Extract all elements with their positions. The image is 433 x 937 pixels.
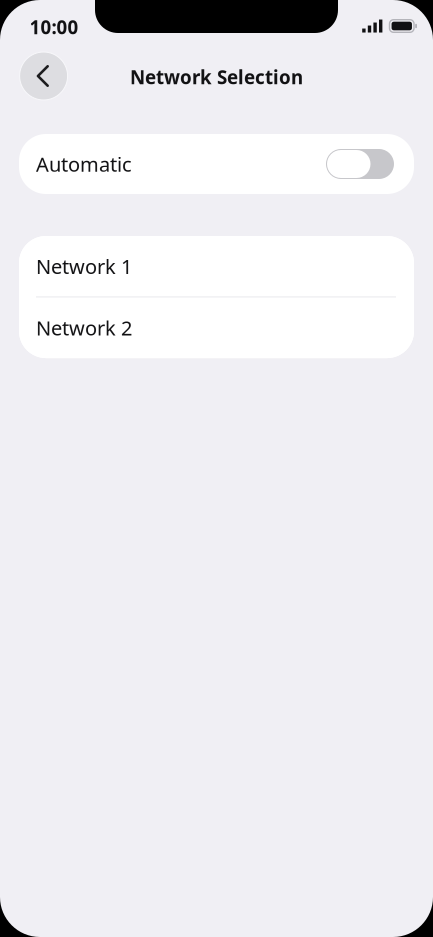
- staticText: Network 1: [36, 253, 132, 280]
- button[interactable]: Back: [20, 52, 68, 100]
- button[interactable]: Network 1: [19, 236, 414, 296]
- button[interactable]: Automatic: [19, 134, 414, 194]
- button[interactable]: Network 2: [19, 298, 414, 358]
- staticText: Automatic: [36, 151, 132, 177]
- staticText: Network 2: [36, 315, 132, 341]
- staticText: Network Selection: [130, 65, 303, 89]
- staticText: 10:00: [29, 15, 78, 39]
